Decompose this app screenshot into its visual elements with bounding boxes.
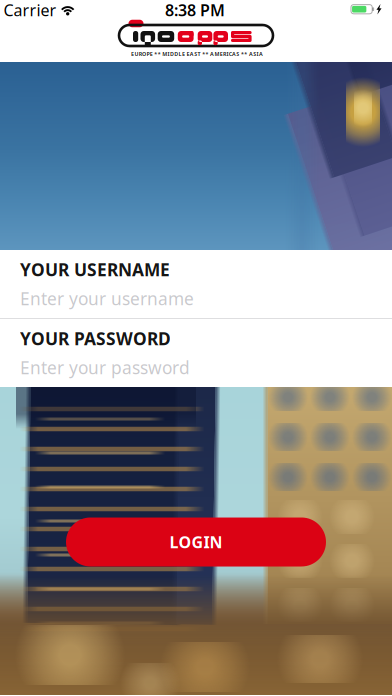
staticText: YOUR USERNAME xyxy=(20,258,170,281)
staticText: EUROPE ** MIDDLE EAST ** AMERICAS ** ASI… xyxy=(131,50,263,58)
staticText: Enter your password xyxy=(20,356,190,379)
staticText: YOUR PASSWORD xyxy=(20,327,171,350)
button[interactable]: LOGIN xyxy=(66,517,326,566)
staticText: LOGIN xyxy=(169,531,222,553)
staticText: Enter your username xyxy=(20,287,194,310)
staticText: 8:38 PM xyxy=(165,0,225,21)
staticText: Carrier xyxy=(3,0,56,21)
